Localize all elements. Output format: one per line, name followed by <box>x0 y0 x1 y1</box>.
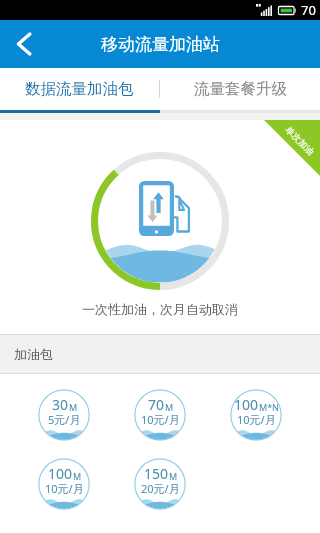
staticText: 数据流量加油包 <box>25 79 134 99</box>
staticText: 30 <box>52 395 69 414</box>
button[interactable]: 150 <box>134 458 186 510</box>
staticText: M*N <box>259 401 279 413</box>
staticText: 一次性加油，次月自动取消 <box>82 301 238 317</box>
button[interactable]: 100 <box>230 389 282 441</box>
button[interactable]: 70 <box>134 389 186 441</box>
staticText: 移动流量加油站 <box>101 34 220 55</box>
staticText: 100 <box>48 464 73 483</box>
staticText: 5元/月 <box>48 412 81 427</box>
button[interactable]: Back <box>0 20 48 68</box>
staticText: 20元/月 <box>141 481 180 496</box>
button[interactable]: 单次加油 <box>264 120 320 176</box>
staticText: 加油包 <box>14 346 53 362</box>
staticText: 70 <box>301 1 316 19</box>
button[interactable]: 数据流量加油包 <box>0 68 159 110</box>
staticText: 10元/月 <box>45 481 84 496</box>
staticText: 10元/月 <box>141 412 180 427</box>
staticText: 10元/月 <box>237 412 276 427</box>
button[interactable]: 100 <box>38 458 90 510</box>
staticText: M <box>73 470 82 482</box>
button[interactable]: 30 <box>38 389 90 441</box>
staticText: M <box>69 401 78 413</box>
staticText: M <box>169 470 178 482</box>
staticText: 单次加油 <box>283 124 317 157</box>
staticText: M <box>165 401 174 413</box>
button[interactable]: 流量套餐升级 <box>160 68 320 110</box>
staticText: 100 <box>234 395 259 414</box>
staticText: 150 <box>144 464 169 483</box>
staticText: 70 <box>148 395 165 414</box>
staticText: 流量套餐升级 <box>194 79 287 99</box>
